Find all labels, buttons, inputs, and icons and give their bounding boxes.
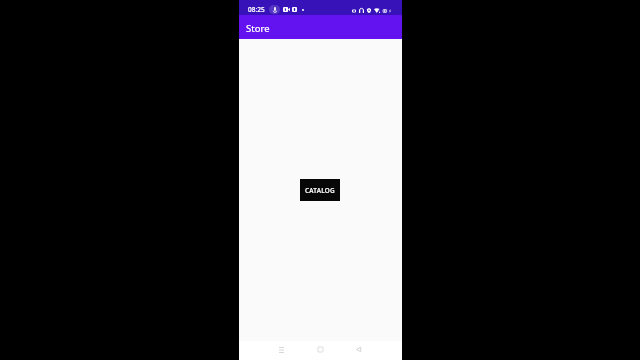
button[interactable]: Home bbox=[307, 341, 334, 360]
staticText: 08:25 bbox=[248, 5, 265, 14]
button[interactable]: CATALOG bbox=[300, 179, 340, 201]
button[interactable]: Recent apps bbox=[268, 341, 295, 360]
staticText: Store bbox=[246, 22, 270, 35]
staticText: CATALOG bbox=[305, 186, 335, 195]
button[interactable]: Back bbox=[345, 341, 372, 360]
